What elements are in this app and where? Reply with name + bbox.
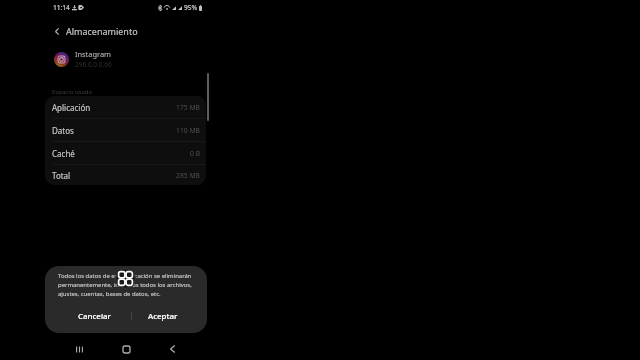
staticText: 110 MB bbox=[176, 126, 201, 135]
staticText: Todos los datos de esta aplicación se el… bbox=[58, 272, 200, 298]
button[interactable]: Back bbox=[50, 22, 64, 40]
button[interactable]: Home bbox=[117, 340, 135, 358]
staticText: 296.0.0.0.66 bbox=[75, 60, 112, 69]
button[interactable]: Datos bbox=[45, 119, 206, 141]
staticText: Aceptar bbox=[148, 311, 178, 322]
staticText: Total bbox=[52, 170, 71, 181]
staticText: Instagram bbox=[75, 49, 111, 59]
staticText: Espacio usado bbox=[52, 88, 93, 96]
button[interactable]: Cancelar bbox=[69, 306, 119, 326]
button[interactable]: Recent apps bbox=[70, 340, 88, 358]
staticText: 175 MB bbox=[176, 103, 201, 112]
button[interactable]: Aplicación bbox=[45, 96, 206, 118]
staticText: 0 B bbox=[190, 149, 201, 158]
button[interactable]: Caché bbox=[45, 142, 206, 164]
staticText: Almacenamiento bbox=[66, 25, 138, 37]
staticText: Caché bbox=[52, 148, 75, 159]
staticText: 95% bbox=[184, 3, 198, 12]
staticText: 285 MB bbox=[176, 171, 201, 180]
button[interactable]: Back bbox=[163, 340, 181, 358]
button[interactable]: Aceptar bbox=[139, 306, 187, 326]
button[interactable]: Assistant menu bbox=[115, 268, 136, 289]
staticText: 11:14 bbox=[53, 3, 70, 12]
staticText: Cancelar bbox=[78, 311, 111, 322]
staticText: Aplicación bbox=[52, 102, 91, 113]
staticText: Datos bbox=[52, 125, 74, 136]
button[interactable]: Total bbox=[45, 165, 206, 185]
